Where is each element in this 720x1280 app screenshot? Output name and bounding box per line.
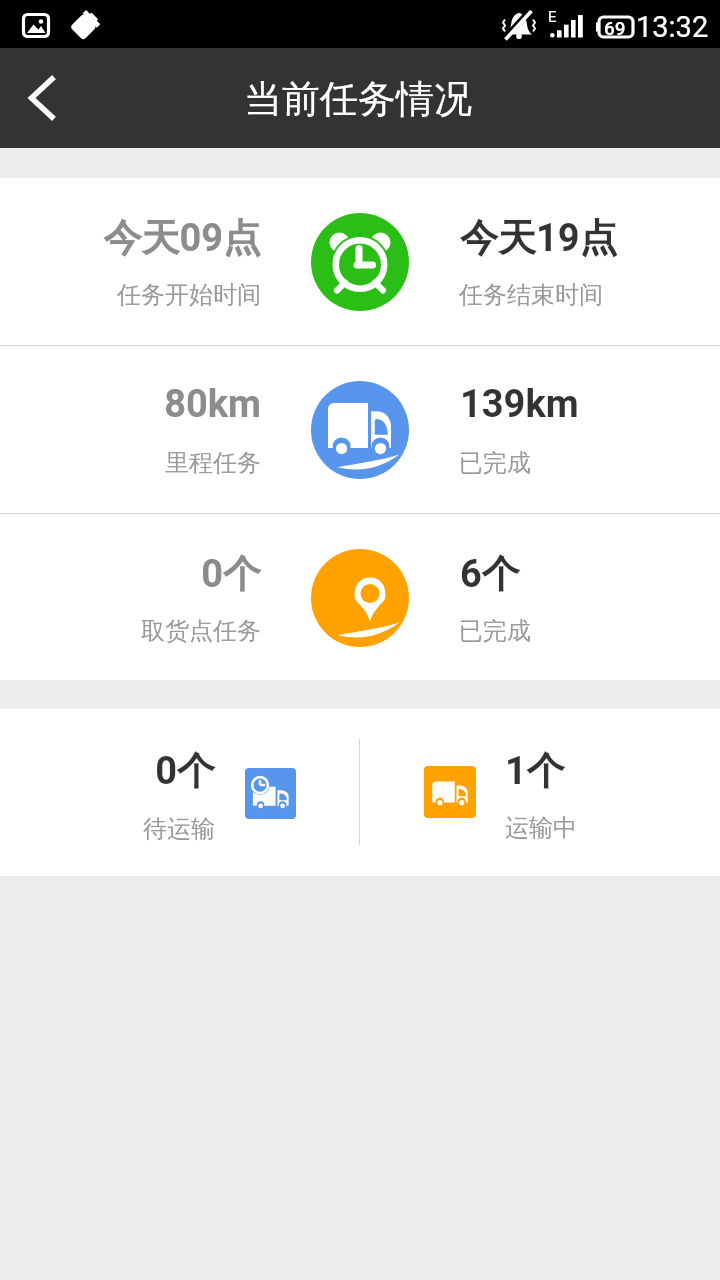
- staticText: 1个: [505, 747, 565, 795]
- staticText: 里程任务: [0, 448, 261, 478]
- staticText: 今天09点: [0, 214, 261, 262]
- staticText: 运输中: [505, 813, 577, 843]
- staticText: 69: [604, 17, 626, 39]
- staticText: 已完成: [459, 616, 531, 646]
- staticText: 0个: [0, 550, 261, 598]
- staticText: 当前任务情况: [244, 75, 472, 123]
- staticText: 80km: [0, 382, 261, 427]
- button[interactable]: 80km: [0, 346, 720, 513]
- staticText: 今天19点: [460, 214, 618, 262]
- staticText: 已完成: [459, 448, 531, 478]
- staticText: 139km: [460, 382, 579, 427]
- button[interactable]: 0个: [0, 514, 720, 681]
- button[interactable]: 0个: [0, 709, 360, 876]
- button[interactable]: Back: [0, 48, 86, 148]
- staticText: 0个: [0, 747, 215, 795]
- staticText: 任务结束时间: [459, 280, 603, 310]
- staticText: 取货点任务: [0, 616, 261, 646]
- button[interactable]: 今天09点: [0, 178, 720, 345]
- staticText: 6个: [460, 550, 520, 598]
- staticText: 13:32: [636, 10, 709, 44]
- staticText: 任务开始时间: [0, 280, 261, 310]
- staticText: 待运输: [0, 814, 215, 844]
- button[interactable]: 1个: [360, 709, 720, 876]
- staticText: E: [548, 8, 557, 26]
